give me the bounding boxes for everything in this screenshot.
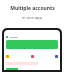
staticText: Multiple accounts [10, 5, 55, 12]
staticText: in one app [22, 15, 42, 20]
